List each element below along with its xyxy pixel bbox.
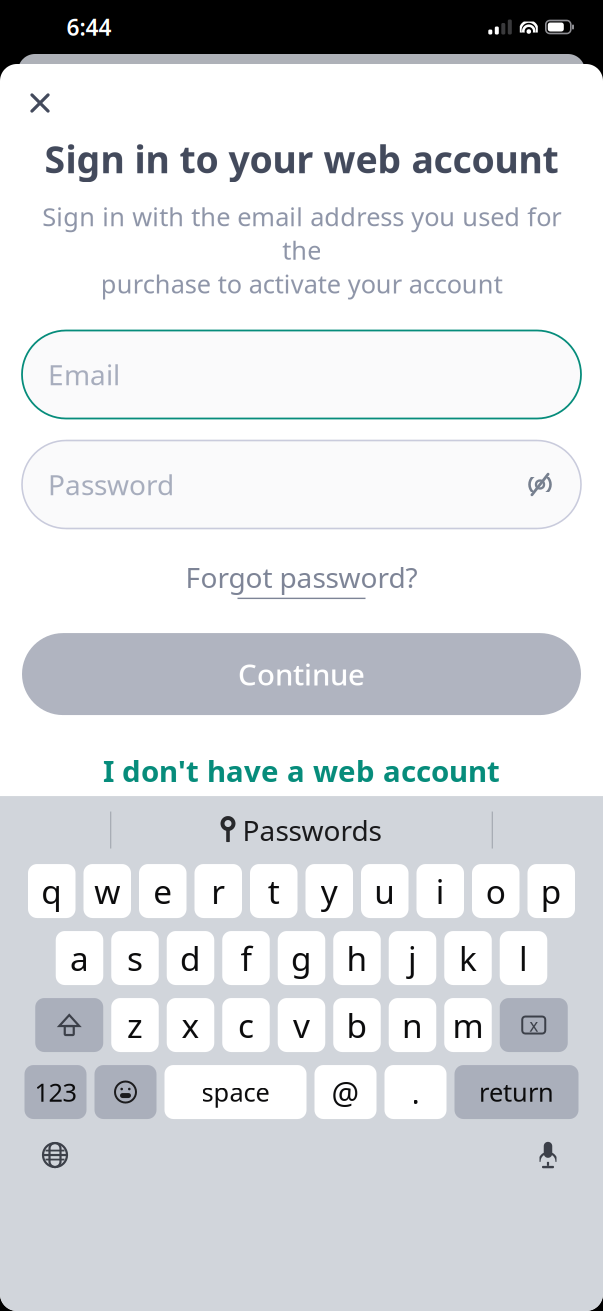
button[interactable]: r [194,864,242,918]
staticText: space [201,1075,269,1109]
staticText: Email [48,356,120,393]
button[interactable]: e [139,864,186,918]
staticText: Sign in to your web account [44,134,558,184]
staticText: Continue [238,655,365,694]
staticText: w [94,869,120,913]
staticText: n [402,1003,423,1047]
button[interactable]: Close [17,80,63,126]
button[interactable]: 123 [24,1065,86,1119]
staticText: o [486,869,506,913]
staticText: h [346,936,367,980]
button[interactable]: @ [314,1065,376,1119]
button[interactable]: Delete [500,998,568,1052]
button[interactable]: g [278,931,325,985]
button[interactable]: z [111,998,159,1052]
staticText: I don't have a web account [103,751,500,790]
button[interactable]: f [222,931,270,985]
staticText: 123 [34,1075,76,1109]
button[interactable]: v [278,998,325,1052]
staticText: j [408,936,417,980]
button[interactable]: x [167,998,214,1052]
staticText: v [293,1003,310,1047]
staticText: @ [331,1072,359,1112]
button[interactable]: Email [22,330,581,418]
button[interactable]: s [111,931,159,985]
button[interactable]: Dictation [525,1132,571,1178]
button[interactable]: o [472,864,519,918]
button[interactable]: k [444,931,492,985]
staticText: r [211,869,225,913]
staticText: t [268,869,280,913]
staticText: s [127,936,143,980]
button[interactable]: Passwords [221,811,381,849]
staticText: return [479,1075,554,1109]
staticText: f [240,936,251,980]
button[interactable]: m [444,998,492,1052]
staticText: . [411,1072,419,1112]
button[interactable]: return [454,1065,578,1119]
staticText: y [321,869,338,913]
staticText: d [180,936,201,980]
button[interactable]: a [56,931,103,985]
button[interactable]: h [333,931,381,985]
button[interactable]: y [305,864,353,918]
button[interactable]: u [361,864,408,918]
button[interactable]: w [83,864,131,918]
staticText: Passwords [242,811,381,849]
staticText: g [291,936,312,980]
button[interactable]: j [389,931,436,985]
staticText: Sign in with the email address you used … [42,200,561,300]
staticText: x [529,1013,538,1036]
button[interactable]: l [500,931,547,985]
button[interactable]: p [527,864,575,918]
staticText: k [459,936,477,980]
button[interactable]: b [333,998,381,1052]
staticText: q [41,869,62,913]
button[interactable]: d [167,931,214,985]
staticText: a [70,936,89,980]
button[interactable]: q [28,864,75,918]
staticText: m [452,1003,483,1047]
staticText: i [436,869,445,913]
staticText: Password [48,466,174,503]
button[interactable]: t [250,864,297,918]
button[interactable]: Shift [35,998,103,1052]
button[interactable]: i [416,864,464,918]
staticText: e [153,869,172,913]
staticText: p [541,869,562,913]
staticText: Forgot password? [185,558,417,596]
button[interactable]: Next keyboard [32,1132,78,1178]
staticText: l [519,936,528,980]
staticText: c [238,1003,254,1047]
staticText: u [374,869,395,913]
button[interactable]: . [384,1065,446,1119]
button[interactable]: Forgot password? [177,550,425,607]
staticText: z [127,1003,143,1047]
staticText: 6:44 [66,12,111,42]
button[interactable]: n [389,998,436,1052]
button[interactable]: Password [22,440,581,528]
staticText: b [346,1003,367,1047]
button[interactable]: Emoji [94,1065,156,1119]
button[interactable]: space [164,1065,306,1119]
button[interactable]: c [222,998,270,1052]
button[interactable]: Continue [22,633,581,715]
button[interactable]: I don't have a web account [103,745,500,796]
staticText: x [181,1003,199,1047]
